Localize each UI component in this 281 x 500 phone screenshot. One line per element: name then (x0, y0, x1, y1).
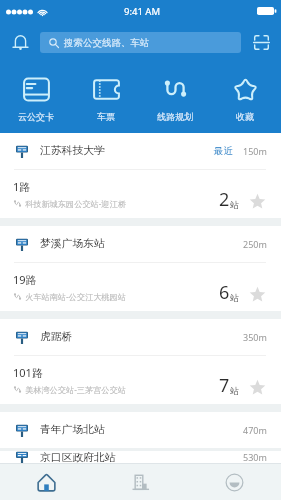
staticText: 车票 (97, 111, 115, 122)
staticText: 9:41 AM (124, 5, 161, 18)
button[interactable]: 虎踞桥 (0, 319, 281, 355)
staticText: 250m (243, 238, 267, 250)
staticText: 梦溪广场东站 (40, 237, 105, 251)
staticText: 350m (243, 331, 267, 343)
staticText: 京口区政府北站 (40, 451, 116, 463)
staticText: 6 (219, 280, 230, 305)
staticText: 470m (243, 424, 267, 436)
staticText: 美林湾公交站-三茅宫公交站 (25, 384, 126, 395)
button[interactable]: Notifications (0, 22, 40, 62)
button[interactable]: Favorite (244, 379, 270, 393)
button[interactable]: 101路 (0, 356, 281, 404)
button[interactable]: Scan (241, 22, 281, 62)
button[interactable]: 梦溪广场东站 (0, 226, 281, 262)
staticText: 19路 (13, 272, 37, 287)
staticText: 站 (230, 199, 239, 210)
staticText: 530m (243, 451, 267, 463)
staticText: 1路 (13, 179, 31, 194)
button[interactable]: 青年广场北站 (0, 412, 281, 448)
button[interactable]: 江苏科技大学 (0, 133, 281, 169)
button[interactable]: 京口区政府北站 (0, 451, 281, 463)
button[interactable]: Favorite (244, 193, 270, 207)
staticText: 最近 (214, 145, 233, 157)
staticText: 火车站南站-公交江大桃园站 (25, 291, 126, 302)
staticText: 2 (219, 187, 230, 212)
button[interactable]: 收藏 (212, 62, 278, 122)
button[interactable]: 1路 (0, 170, 281, 218)
staticText: 线路规划 (157, 111, 193, 122)
button[interactable]: 云公交卡 (3, 62, 69, 122)
button[interactable]: 19路 (0, 263, 281, 311)
button[interactable]: Home (0, 464, 93, 500)
button[interactable]: 车票 (73, 62, 139, 122)
staticText: 虎踞桥 (40, 330, 73, 344)
button[interactable]: Profile (187, 464, 281, 500)
staticText: 站 (230, 292, 239, 303)
staticText: 青年广场北站 (40, 423, 105, 437)
button[interactable]: Places (93, 464, 187, 500)
staticText: 150m (243, 145, 267, 157)
staticText: 站 (230, 385, 239, 396)
staticText: 101路 (13, 365, 43, 380)
staticText: 收藏 (236, 111, 254, 122)
button[interactable]: 搜索公交线路、车站 (40, 32, 241, 53)
staticText: 科技新城东园公交站-迎江桥 (25, 198, 126, 209)
staticText: 江苏科技大学 (40, 144, 105, 158)
button[interactable]: Favorite (244, 286, 270, 300)
staticText: 7 (219, 373, 230, 398)
staticText: 云公交卡 (18, 111, 54, 122)
staticText: 搜索公交线路、车站 (64, 37, 150, 49)
button[interactable]: 线路规划 (142, 62, 208, 122)
